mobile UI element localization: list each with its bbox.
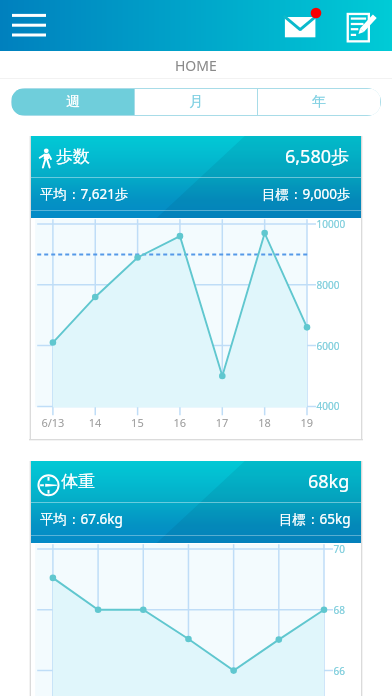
button[interactable]: 歩数 <box>31 136 361 439</box>
staticText: 平均：67.6kg <box>40 510 123 528</box>
staticText: 体重 <box>61 471 95 492</box>
button[interactable]: Menu <box>0 0 56 51</box>
button[interactable]: 月 <box>135 89 257 115</box>
button[interactable]: Edit <box>340 0 384 51</box>
button[interactable]: 体重 <box>31 461 361 696</box>
staticText: 目標：9,000歩 <box>262 185 351 203</box>
staticText: HOME <box>175 56 217 75</box>
button[interactable]: 年 <box>258 89 380 115</box>
staticText: 月 <box>189 93 203 111</box>
button[interactable]: Messages <box>279 0 323 51</box>
staticText: 週 <box>66 93 80 111</box>
staticText: 平均：7,621歩 <box>40 185 129 203</box>
staticText: 目標：65kg <box>279 510 351 528</box>
staticText: 年 <box>312 93 326 111</box>
button[interactable]: 週 <box>12 89 134 115</box>
staticText: 68kg <box>308 469 350 494</box>
staticText: 歩数 <box>56 146 90 167</box>
staticText: 6,580歩 <box>285 144 350 169</box>
